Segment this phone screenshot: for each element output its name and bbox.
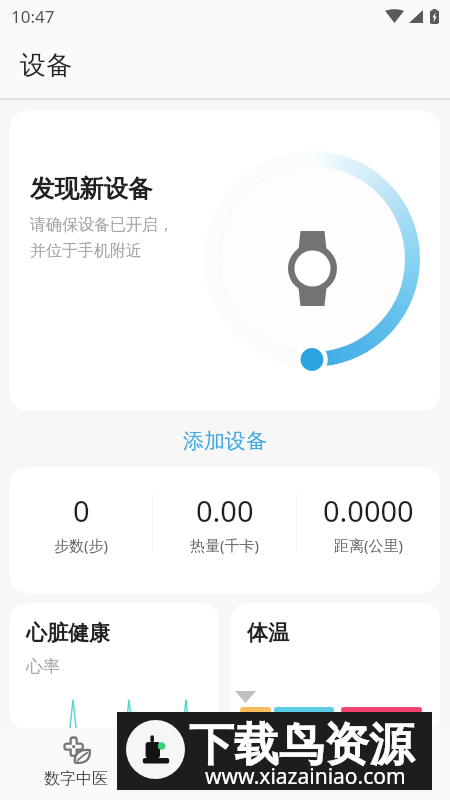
button[interactable]: 0	[10, 467, 152, 579]
staticText: 添加设备	[183, 428, 267, 454]
button[interactable]: 发现新设备	[10, 111, 440, 411]
button[interactable]: 0.00	[153, 467, 296, 579]
staticText: 心脏健康	[26, 620, 110, 646]
staticText: 热量(千卡)	[190, 535, 260, 555]
button[interactable]: 0.0000	[297, 467, 440, 579]
button[interactable]: 心脏健康	[10, 603, 219, 730]
staticText: 数字中医	[44, 769, 108, 789]
staticText: 请确保设备已开启， 并位于手机附近	[30, 215, 174, 261]
staticText: 体温	[247, 620, 289, 646]
staticText: 0	[73, 491, 90, 530]
staticText: 步数(步)	[54, 535, 109, 555]
staticText: 距离(公里)	[334, 535, 404, 555]
staticText: 心率	[26, 656, 60, 677]
staticText: www.xiazainiao.com	[205, 762, 406, 791]
staticText: 0.0000	[323, 491, 414, 530]
staticText: 0.00	[196, 491, 254, 530]
staticText: 设备	[20, 49, 72, 82]
staticText: 下载鸟资源	[189, 717, 414, 774]
button[interactable]: 数字中医	[34, 732, 118, 793]
other: 数字中医	[63, 736, 90, 763]
button[interactable]: 体温	[231, 603, 440, 730]
staticText: 10:47	[11, 5, 55, 28]
button[interactable]: 添加设备	[159, 424, 291, 458]
staticText: 发现新设备	[30, 173, 153, 204]
